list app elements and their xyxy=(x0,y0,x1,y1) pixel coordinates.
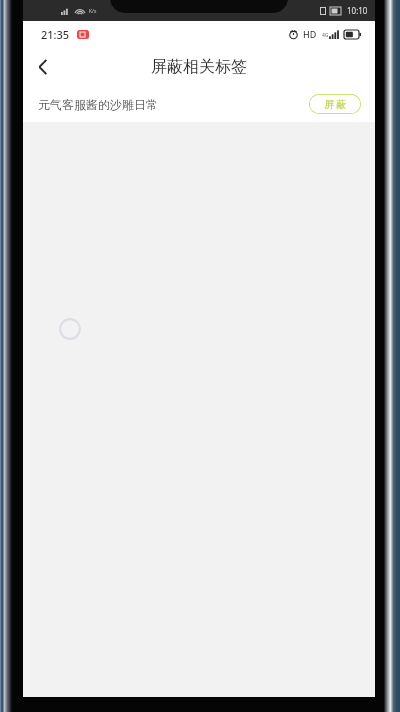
staticText: 10:10 xyxy=(347,5,368,16)
staticText: 元气客服酱的沙雕日常 xyxy=(38,97,158,112)
button[interactable]: 屏 蔽 xyxy=(309,94,361,114)
staticText: K/s xyxy=(89,8,97,15)
staticText: 21:35 xyxy=(41,27,70,42)
staticText: 4G xyxy=(322,32,329,39)
button[interactable]: Back xyxy=(23,47,63,86)
staticText: 屏 蔽 xyxy=(324,97,347,111)
staticText: 屏蔽相关标签 xyxy=(151,57,247,77)
staticText: HD xyxy=(303,28,317,40)
button[interactable]: 元气客服酱的沙雕日常 xyxy=(23,86,375,122)
